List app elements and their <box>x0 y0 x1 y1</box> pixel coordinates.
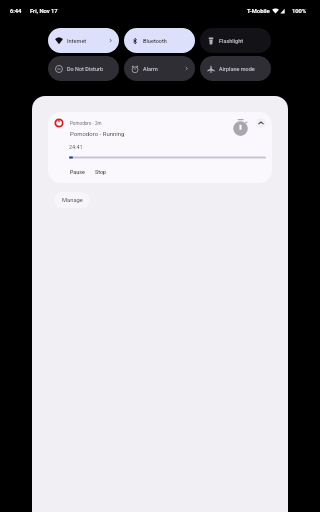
staticText: Do Not Disturb <box>67 66 104 72</box>
staticText: Fri, Nov 17 <box>30 8 58 15</box>
staticText: Flashlight <box>219 38 244 44</box>
staticText: Internet <box>67 38 87 44</box>
staticText: Bluetooth <box>143 38 167 44</box>
button[interactable]: Pomodoro · 2m <box>48 112 272 183</box>
button[interactable]: Stop <box>92 167 109 177</box>
button[interactable]: Alarm <box>124 56 195 81</box>
staticText: Airplane mode <box>219 66 255 72</box>
staticText: Alarm <box>143 66 158 72</box>
button[interactable]: Manage <box>54 192 90 208</box>
button[interactable]: Collapse notification <box>256 118 266 128</box>
staticText: T-Mobile <box>247 8 270 15</box>
button[interactable]: Bluetooth <box>124 28 195 53</box>
staticText: Pause <box>70 169 85 175</box>
button[interactable]: Airplane mode <box>200 56 271 81</box>
staticText: Manage <box>62 197 83 204</box>
staticText: 24:41 <box>69 144 83 150</box>
button[interactable]: Pause <box>67 167 88 177</box>
button[interactable]: Flashlight <box>200 28 271 53</box>
button[interactable]: Internet <box>48 28 119 53</box>
staticText: Pomodoro - Running <box>70 130 125 137</box>
staticText: Pomodoro · 2m <box>70 121 102 126</box>
staticText: 6:44 <box>10 8 22 15</box>
staticText: 100% <box>292 8 307 15</box>
staticText: Stop <box>95 169 106 175</box>
button[interactable]: Do Not Disturb <box>48 56 119 81</box>
